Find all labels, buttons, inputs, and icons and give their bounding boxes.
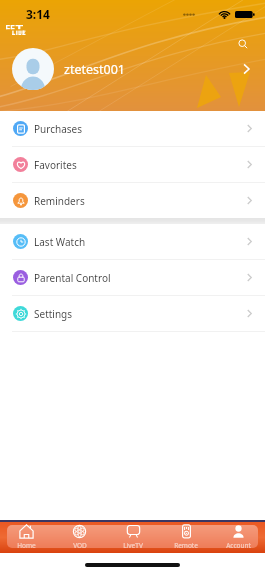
staticText: ztetest001 bbox=[64, 61, 125, 78]
button[interactable]: ztetest001 bbox=[0, 43, 265, 95]
button[interactable]: Reminders bbox=[0, 183, 265, 218]
button[interactable]: Search bbox=[231, 32, 254, 55]
button[interactable]: Settings bbox=[0, 296, 265, 331]
staticText: Parental Control bbox=[34, 271, 111, 285]
button[interactable]: VOD bbox=[53, 524, 106, 552]
staticText: Purchases bbox=[34, 122, 82, 136]
staticText: Account bbox=[226, 541, 251, 550]
button[interactable]: LiveTV bbox=[106, 524, 159, 552]
button[interactable]: Favorites bbox=[0, 147, 265, 182]
staticText: Last Watch bbox=[34, 235, 86, 249]
staticText: Remote bbox=[174, 541, 198, 550]
staticText: Reminders bbox=[34, 194, 85, 208]
staticText: 3:14 bbox=[26, 6, 50, 22]
button[interactable]: Last Watch bbox=[0, 224, 265, 259]
staticText: Settings bbox=[34, 307, 73, 321]
staticText: Favorites bbox=[34, 158, 77, 172]
button[interactable]: Home bbox=[0, 524, 53, 552]
staticText: VOD bbox=[73, 541, 87, 550]
button[interactable]: Account bbox=[212, 524, 265, 552]
button[interactable]: Remote bbox=[159, 524, 212, 552]
staticText: Home bbox=[17, 541, 36, 550]
button[interactable]: Parental Control bbox=[0, 260, 265, 295]
staticText: LiveTV bbox=[123, 541, 143, 550]
button[interactable]: Purchases bbox=[0, 111, 265, 146]
